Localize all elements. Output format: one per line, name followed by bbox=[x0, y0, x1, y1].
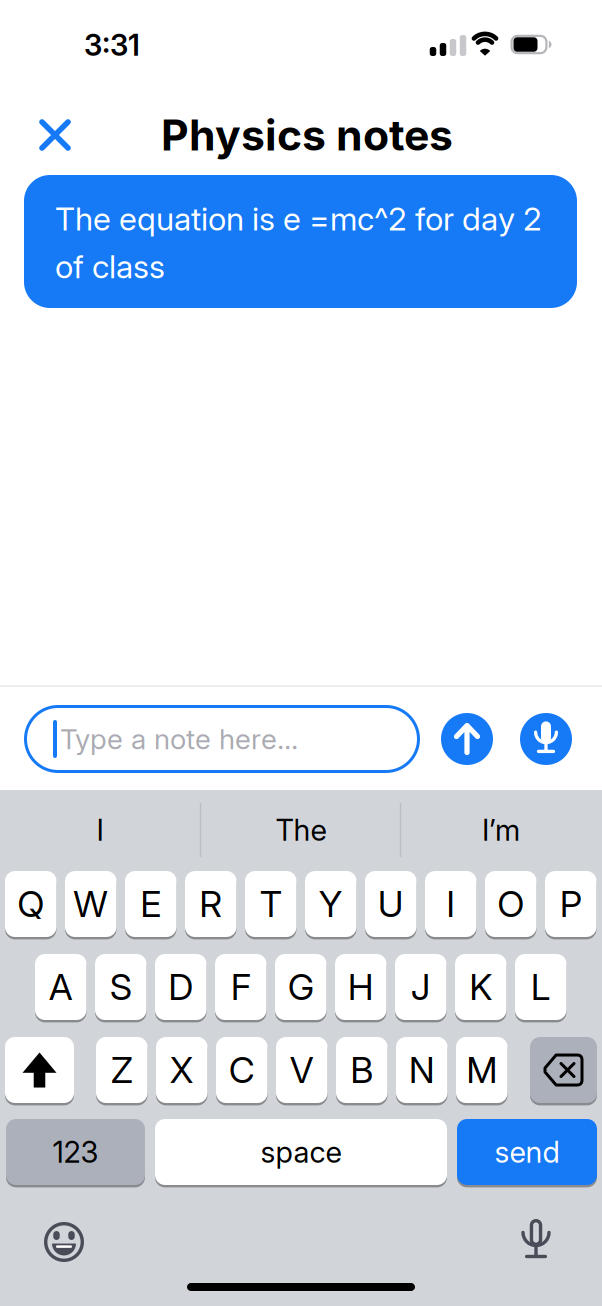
button[interactable]: Type a note here bbox=[24, 705, 420, 773]
button[interactable]: E bbox=[125, 871, 176, 939]
button[interactable]: G bbox=[275, 954, 326, 1022]
button[interactable]: C bbox=[216, 1037, 267, 1105]
staticText: 123 bbox=[52, 1135, 98, 1169]
button[interactable]: The bbox=[211, 800, 391, 860]
button[interactable]: Z bbox=[96, 1037, 147, 1105]
button[interactable]: D bbox=[155, 954, 206, 1022]
staticText: A bbox=[49, 966, 73, 1008]
button[interactable]: Close bbox=[32, 112, 78, 158]
staticText: B bbox=[350, 1049, 373, 1091]
staticText: F bbox=[231, 966, 251, 1008]
staticText: H bbox=[348, 966, 374, 1008]
button[interactable]: Emoji bbox=[42, 1220, 86, 1264]
staticText: The bbox=[275, 813, 326, 847]
button[interactable]: Delete bbox=[530, 1037, 597, 1105]
staticText: T bbox=[260, 883, 282, 925]
button[interactable]: space bbox=[155, 1119, 447, 1187]
staticText: X bbox=[170, 1049, 194, 1091]
staticText: I bbox=[96, 813, 103, 847]
button[interactable]: J bbox=[395, 954, 446, 1022]
button[interactable]: F bbox=[215, 954, 266, 1022]
button[interactable]: M bbox=[456, 1037, 507, 1105]
button[interactable]: R bbox=[185, 871, 236, 939]
staticText: R bbox=[199, 883, 222, 925]
staticText: L bbox=[531, 966, 551, 1008]
staticText: I bbox=[446, 883, 455, 925]
staticText: The equation is e =mc^2 for day 2 bbox=[55, 200, 542, 238]
button[interactable]: V bbox=[276, 1037, 327, 1105]
staticText: space bbox=[260, 1135, 341, 1169]
staticText: of class bbox=[55, 248, 165, 286]
button[interactable]: W bbox=[65, 871, 116, 939]
button[interactable]: Y bbox=[305, 871, 356, 939]
staticText: Q bbox=[17, 883, 44, 925]
staticText: N bbox=[409, 1049, 435, 1091]
staticText: D bbox=[168, 966, 193, 1008]
button[interactable]: P bbox=[545, 871, 596, 939]
button[interactable]: U bbox=[365, 871, 416, 939]
button[interactable]: S bbox=[95, 954, 146, 1022]
button[interactable]: Shift bbox=[5, 1037, 74, 1105]
button[interactable]: B bbox=[336, 1037, 387, 1105]
staticText: U bbox=[378, 883, 404, 925]
staticText: 3:31 bbox=[84, 28, 140, 62]
staticText: J bbox=[411, 966, 431, 1008]
button[interactable]: Send bbox=[441, 713, 493, 765]
staticText: V bbox=[290, 1049, 314, 1091]
staticText: E bbox=[140, 883, 161, 925]
staticText: P bbox=[560, 883, 582, 925]
staticText: K bbox=[469, 966, 492, 1008]
button[interactable]: T bbox=[245, 871, 296, 939]
staticText: G bbox=[288, 966, 314, 1008]
staticText: send bbox=[494, 1135, 559, 1169]
staticText: W bbox=[73, 883, 108, 925]
button[interactable]: I bbox=[425, 871, 476, 939]
button[interactable]: 123 bbox=[6, 1119, 145, 1187]
staticText: Z bbox=[111, 1049, 133, 1091]
button[interactable]: L bbox=[515, 954, 566, 1022]
staticText: C bbox=[229, 1049, 255, 1091]
button[interactable]: Q bbox=[5, 871, 56, 939]
staticText: Physics notes bbox=[161, 110, 453, 160]
button[interactable]: X bbox=[156, 1037, 207, 1105]
button[interactable]: I bbox=[10, 800, 190, 860]
staticText: O bbox=[497, 883, 524, 925]
staticText: I’m bbox=[482, 813, 520, 847]
staticText: Type a note here... bbox=[60, 722, 298, 755]
button[interactable]: send bbox=[457, 1119, 597, 1187]
button[interactable]: N bbox=[396, 1037, 447, 1105]
staticText: Y bbox=[319, 883, 343, 925]
button[interactable]: Dictation bbox=[514, 1217, 558, 1265]
staticText: M bbox=[466, 1049, 497, 1091]
button[interactable]: O bbox=[485, 871, 536, 939]
button[interactable]: K bbox=[455, 954, 506, 1022]
button[interactable]: H bbox=[335, 954, 386, 1022]
button[interactable]: I’m bbox=[411, 800, 591, 860]
button[interactable]: A bbox=[35, 954, 86, 1022]
button[interactable]: Dictate bbox=[520, 713, 572, 765]
staticText: S bbox=[110, 966, 132, 1008]
